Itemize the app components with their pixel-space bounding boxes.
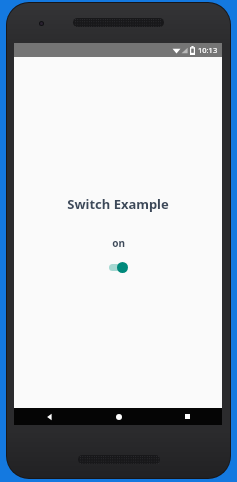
staticText: Switch Example <box>67 195 169 213</box>
button[interactable]: Back <box>14 408 84 425</box>
button[interactable]: Recent apps <box>153 408 222 425</box>
staticText: 10:13 <box>198 45 218 55</box>
button[interactable]: Home <box>84 408 153 425</box>
button[interactable]: Toggle switch, on <box>102 259 134 275</box>
staticText: on <box>112 236 125 250</box>
